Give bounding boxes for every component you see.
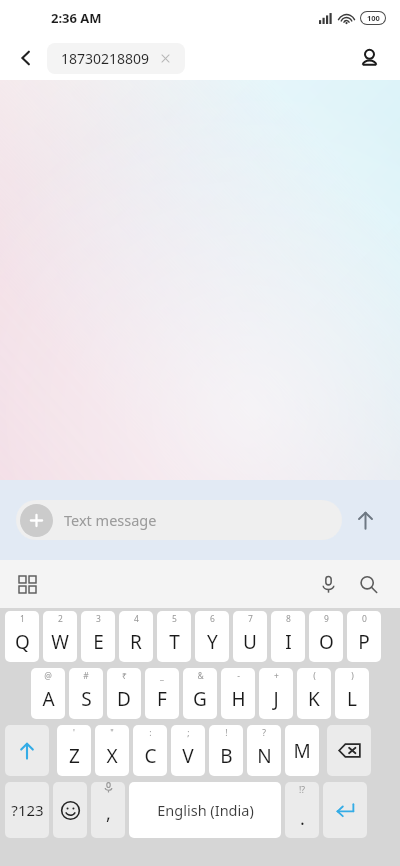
staticText: 100 [367,13,380,23]
staticText: Y [207,629,218,655]
staticText: F [157,686,167,712]
button[interactable]: Voice input [308,564,348,604]
staticText: Text message [64,510,157,530]
staticText: V [182,743,194,769]
button[interactable]: Backspace [327,725,371,776]
staticText: ? [262,727,266,739]
button[interactable]: - [221,668,255,719]
staticText: A [42,686,55,712]
staticText: C [144,743,157,769]
staticText: M [293,738,311,764]
staticText: B [220,743,233,769]
button[interactable]: # [69,668,103,719]
staticText: 18730218809 [61,49,150,68]
staticText: Z [69,743,80,769]
button[interactable]: Enter [323,782,367,838]
staticText: N [257,743,272,769]
staticText: 4 [134,613,139,625]
staticText: ; [187,727,190,739]
button[interactable]: Add attachment [16,500,342,540]
button[interactable]: Send [342,497,388,543]
staticText: # [83,670,89,682]
button[interactable]: 18730218809 [47,43,185,74]
button[interactable]: ₹ [107,668,141,719]
button[interactable]: 3 [81,611,115,662]
staticText: ?123 [11,800,44,820]
staticText: - [237,670,240,682]
button[interactable]: ! [209,725,243,776]
button[interactable]: ; [171,725,205,776]
button[interactable]: 6 [195,611,229,662]
staticText: : [149,727,152,739]
button[interactable]: 4 [119,611,153,662]
staticText: ' [73,727,75,739]
staticText: Q [15,629,30,655]
staticText: 5 [172,613,177,625]
staticText: O [319,629,334,655]
staticText: E [93,629,104,655]
button[interactable]: 8 [271,611,305,662]
button[interactable]: M [285,725,319,776]
button[interactable]: ?123 [5,782,49,838]
staticText: W [51,629,69,655]
staticText: J [273,686,279,712]
staticText: R [130,629,142,655]
staticText: 1 [20,613,25,625]
button[interactable]: Contact details [350,39,388,77]
staticText: , [106,801,111,826]
staticText: K [308,686,320,712]
button[interactable]: 5 [157,611,191,662]
staticText: ) [351,670,354,682]
staticText: P [358,629,370,655]
button[interactable]: _ [145,668,179,719]
button[interactable]: @ [31,668,65,719]
button[interactable]: : [133,725,167,776]
staticText: ₹ [122,670,127,682]
button[interactable]: Add attachment [20,504,53,537]
staticText: L [347,686,357,712]
button[interactable]: Shift [5,725,49,776]
staticText: !? [299,784,305,796]
button[interactable]: ? [247,725,281,776]
staticText: ! [225,727,228,739]
staticText: 0 [362,613,367,625]
staticText: U [243,629,257,655]
staticText: 7 [248,613,253,625]
staticText: 6 [210,613,215,625]
button[interactable]: ( [297,668,331,719]
button[interactable]: 7 [233,611,267,662]
staticText: G [193,686,207,712]
button[interactable]: Keyboard menu [8,565,46,603]
staticText: I [285,629,292,655]
button[interactable]: 1 [5,611,39,662]
button[interactable]: Search [348,564,388,604]
button[interactable]: & [183,668,217,719]
button[interactable]: , [91,782,125,838]
button[interactable]: 9 [309,611,343,662]
button[interactable]: Back [8,40,44,76]
staticText: 8 [286,613,291,625]
button[interactable]: !? [285,782,319,838]
button[interactable]: ' [57,725,91,776]
staticText: 9 [324,613,329,625]
staticText: T [169,629,180,655]
staticText: X [106,743,118,769]
staticText: D [117,686,131,712]
staticText: . [300,806,305,831]
button[interactable]: 2 [43,611,77,662]
staticText: English (India) [157,800,254,820]
staticText: 2:36 AM [51,9,102,27]
button[interactable]: " [95,725,129,776]
button[interactable]: English (India) [129,782,281,838]
staticText: & [197,670,204,682]
button[interactable]: 0 [347,611,381,662]
staticText: @ [44,670,52,682]
staticText: 2 [58,613,63,625]
staticText: 3 [96,613,101,625]
staticText: + [274,670,279,682]
button[interactable]: ) [335,668,369,719]
button[interactable]: Emoji [53,782,87,838]
staticText: " [110,727,114,739]
staticText: S [81,686,92,712]
button[interactable]: + [259,668,293,719]
